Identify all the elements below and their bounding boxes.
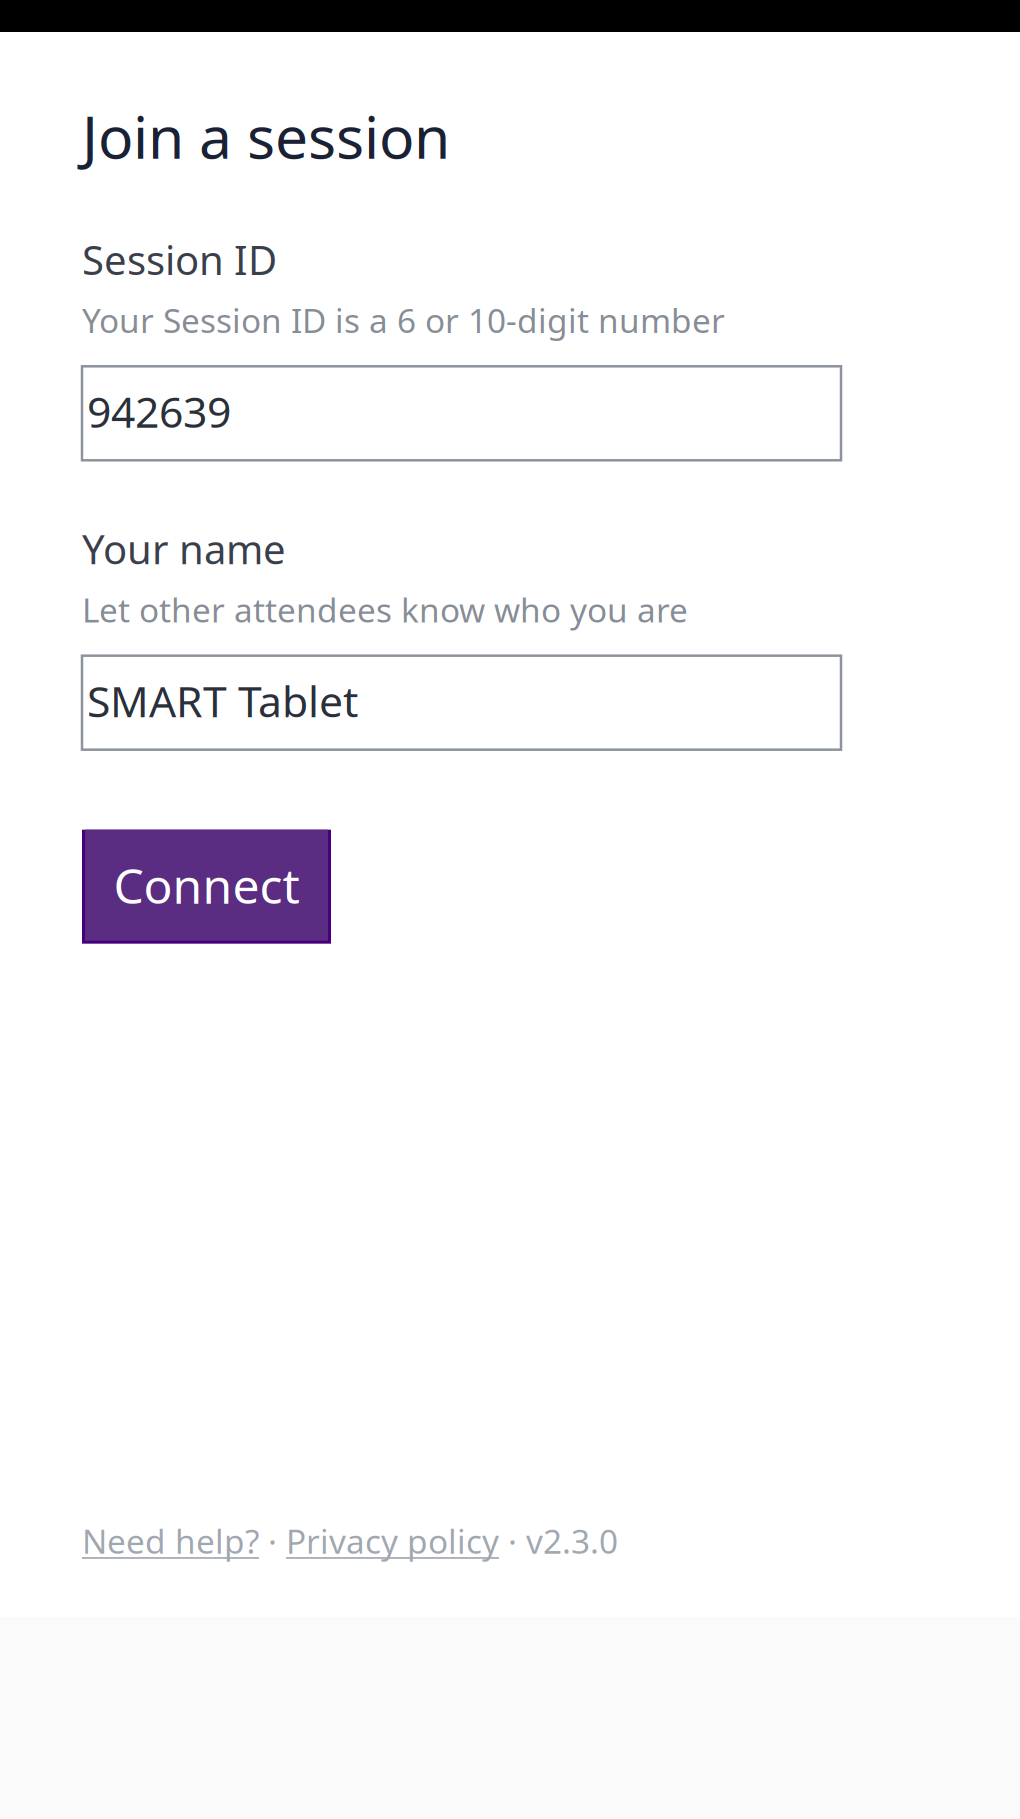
button[interactable]: Privacy policy <box>286 1519 499 1563</box>
staticText: 942639 <box>87 383 231 440</box>
staticText: Session ID <box>82 233 277 286</box>
staticText: Your name <box>82 522 286 575</box>
staticText: SMART Tablet <box>87 672 358 729</box>
staticText: Your Session ID is a 6 or 10-digit numbe… <box>82 298 725 342</box>
staticText: Connect <box>113 853 299 917</box>
staticText: · v2.3.0 <box>499 1519 618 1563</box>
button[interactable]: Need help? <box>82 1519 259 1563</box>
staticText: Let other attendees know who you are <box>82 587 688 632</box>
staticText: · <box>259 1519 286 1563</box>
button[interactable]: Session ID <box>82 366 841 460</box>
staticText: Need help? <box>82 1519 259 1563</box>
button[interactable]: Connect <box>82 830 331 944</box>
button[interactable]: Your name <box>82 656 841 750</box>
staticText: Join a session <box>82 97 450 175</box>
staticText: Privacy policy <box>286 1519 499 1563</box>
